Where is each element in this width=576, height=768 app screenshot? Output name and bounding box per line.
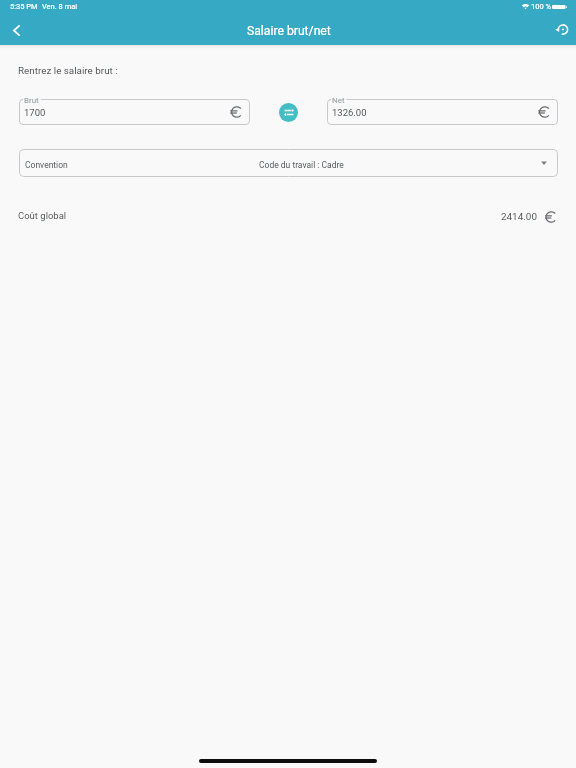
staticText: Convention (25, 160, 68, 170)
button[interactable]: Back (1, 16, 31, 45)
staticText: 100 % (531, 2, 551, 11)
button[interactable]: Convention (19, 149, 558, 177)
button[interactable]: Net (327, 99, 558, 125)
staticText: Ven. 8 mai (42, 2, 78, 11)
staticText: Salaire brut/net (247, 24, 331, 38)
staticText: Brut (24, 96, 39, 105)
button[interactable]: Brut (19, 99, 250, 125)
staticText: 2414.00 (501, 211, 537, 223)
button[interactable]: Swap brut and net (279, 103, 298, 122)
staticText: Net (332, 96, 345, 105)
staticText: 1700 (24, 107, 46, 118)
button[interactable]: History (547, 15, 576, 44)
staticText: Rentrez le salaire brut : (18, 65, 118, 77)
staticText: Coût global (18, 210, 67, 221)
staticText: 5:35 PM (10, 2, 38, 11)
staticText: 1326.00 (332, 107, 367, 118)
staticText: Code du travail : Cadre (259, 160, 344, 170)
